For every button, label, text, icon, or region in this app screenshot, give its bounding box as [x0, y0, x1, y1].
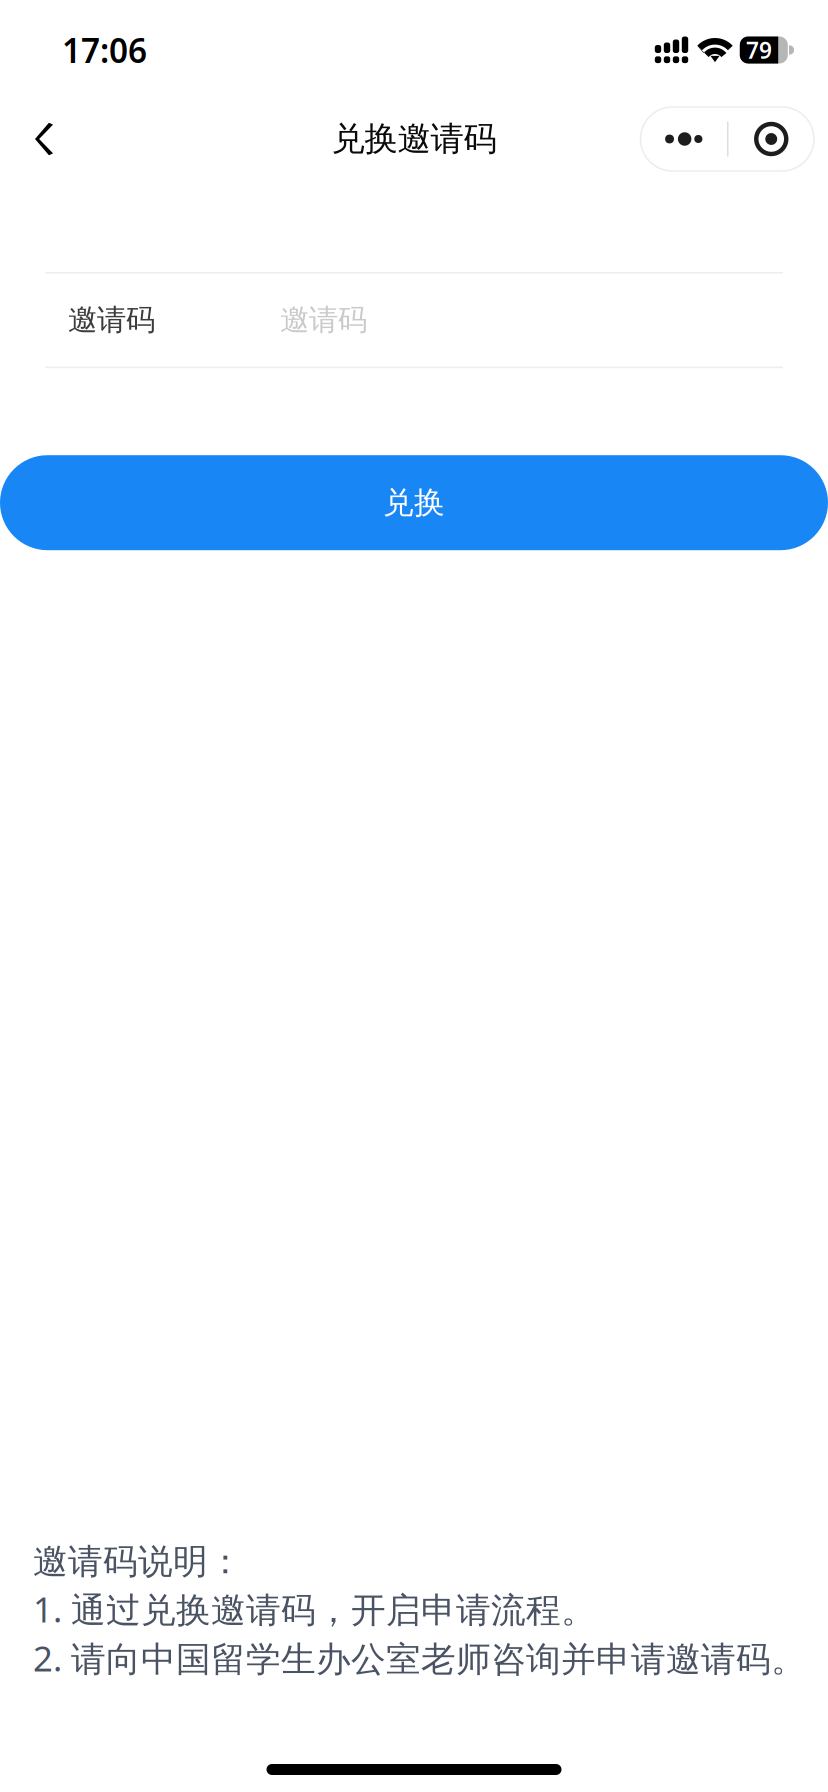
staticText: 79: [746, 35, 772, 65]
button[interactable]: Close mini program: [728, 107, 814, 171]
staticText: 邀请码说明：: [33, 1540, 243, 1583]
button[interactable]: Back: [0, 95, 88, 183]
staticText: 兑换: [383, 484, 445, 522]
button[interactable]: 兑换: [0, 455, 828, 550]
staticText: 邀请码: [280, 302, 367, 338]
staticText: 兑换邀请码: [331, 118, 496, 159]
button[interactable]: 邀请码: [45, 274, 783, 367]
button[interactable]: More options: [640, 107, 727, 171]
staticText: 邀请码: [68, 302, 155, 338]
staticText: 2. 请向中国留学生办公室老师咨询并申请邀请码。: [33, 1635, 806, 1681]
staticText: 17:06: [62, 28, 147, 72]
staticText: 1. 通过兑换邀请码，开启申请流程。: [33, 1586, 596, 1632]
